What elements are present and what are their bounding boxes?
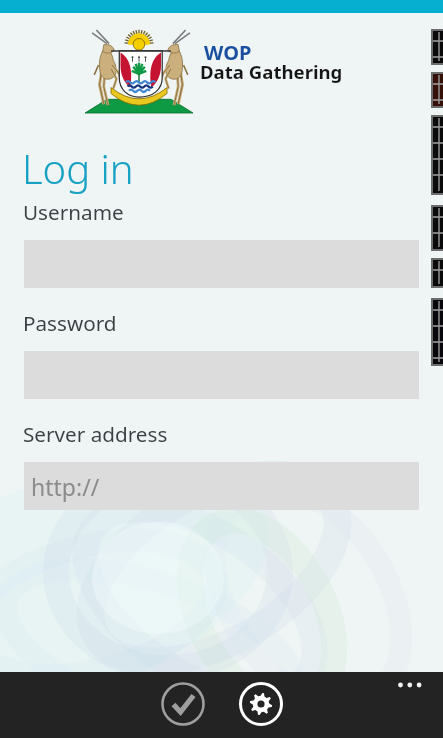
button[interactable]: Settings [237,680,285,728]
staticText: Log in [22,141,134,195]
button[interactable]: http:// [24,462,419,510]
staticText: Username [23,198,124,226]
staticText: WOP [204,39,252,66]
staticText: Server address [23,420,168,448]
staticText: Password [23,309,117,337]
staticText: http:// [31,471,100,502]
button[interactable]: Accept [159,680,207,728]
button[interactable]: More options [387,672,433,698]
staticText: Data Gathering [200,59,343,84]
